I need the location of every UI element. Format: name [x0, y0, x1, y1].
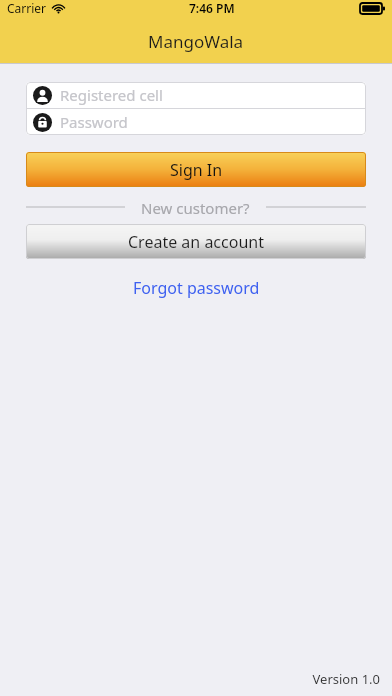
other: User [33, 86, 52, 105]
other: Password [33, 113, 52, 132]
staticText: Password [60, 112, 128, 132]
button[interactable]: Forgot password [123, 273, 270, 303]
staticText: Sign In [170, 159, 223, 181]
staticText: Version 1.0 [312, 670, 380, 688]
other: Battery full [360, 3, 385, 14]
staticText: Carrier [7, 0, 47, 16]
button[interactable]: Password [26, 109, 366, 135]
button[interactable]: User [26, 82, 366, 108]
button[interactable]: Sign In [26, 152, 366, 187]
button[interactable]: Create an account [26, 224, 366, 259]
other: Wi-Fi [52, 2, 65, 15]
staticText: Create an account [128, 231, 264, 253]
staticText: MangoWala [148, 30, 244, 53]
staticText: New customer? [141, 198, 250, 216]
staticText: Registered cell [60, 85, 163, 105]
staticText: Forgot password [133, 277, 260, 299]
staticText: 7:46 PM [189, 0, 235, 16]
